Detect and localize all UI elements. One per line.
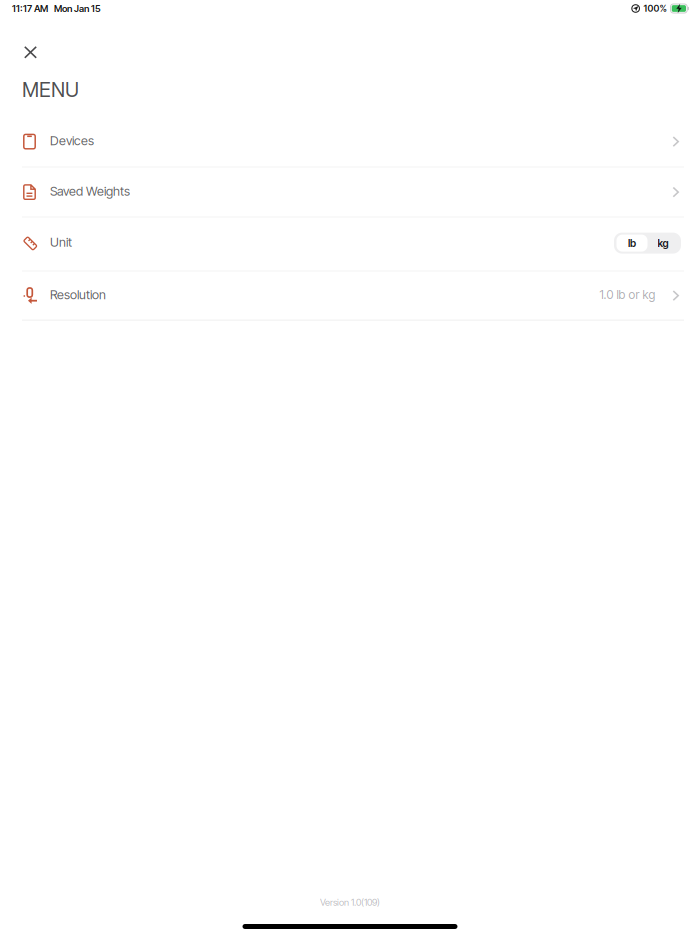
staticText: kg — [657, 237, 668, 249]
staticText: Devices — [50, 133, 94, 148]
staticText: MENU — [22, 77, 79, 102]
staticText: lb — [628, 237, 636, 249]
button[interactable]: Devices — [0, 117, 700, 167]
staticText: 100% — [643, 3, 666, 14]
staticText: Unit — [50, 234, 72, 250]
staticText: Version 1.0(109) — [320, 897, 380, 908]
button[interactable]: Close — [13, 21, 48, 69]
staticText: Saved Weights — [50, 183, 130, 199]
staticText: Mon Jan 15 — [54, 3, 101, 14]
button[interactable]: lb — [616, 235, 647, 252]
staticText: 1.0 lb or kg — [599, 287, 655, 302]
button[interactable]: Resolution — [0, 272, 700, 320]
button[interactable]: kg — [647, 235, 678, 252]
button[interactable]: Saved Weights — [0, 168, 700, 217]
staticText: Resolution — [50, 287, 106, 302]
staticText: 11:17 AM — [12, 3, 48, 14]
